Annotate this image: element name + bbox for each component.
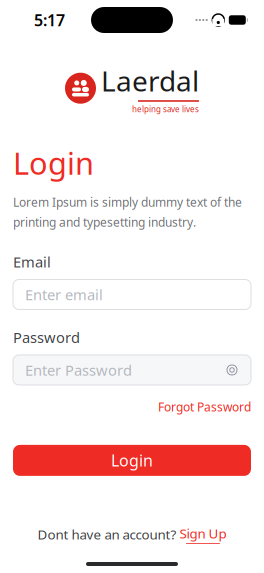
staticText: Enter Password	[25, 360, 132, 380]
staticText: Sign Up	[179, 524, 226, 542]
staticText: Email	[13, 252, 51, 271]
staticText: Login	[111, 450, 153, 471]
staticText: Forgot Password	[158, 399, 251, 415]
staticText: Laerdal	[101, 62, 199, 99]
staticText: 5:17	[34, 9, 65, 31]
staticText: Lorem Ipsum is simply dummy text of the …	[13, 194, 242, 230]
button[interactable]: Forgot Password	[158, 399, 251, 415]
button[interactable]: Enter email	[13, 279, 251, 309]
staticText: helping save lives	[132, 104, 199, 114]
staticText: Dont have an account?	[37, 525, 176, 543]
staticText: Enter email	[25, 285, 103, 304]
staticText: Password	[13, 327, 80, 347]
button[interactable]: Sign Up	[179, 524, 226, 544]
staticText: Login	[13, 142, 94, 183]
button[interactable]: Login	[13, 445, 251, 476]
button[interactable]: Enter Password	[13, 355, 251, 385]
